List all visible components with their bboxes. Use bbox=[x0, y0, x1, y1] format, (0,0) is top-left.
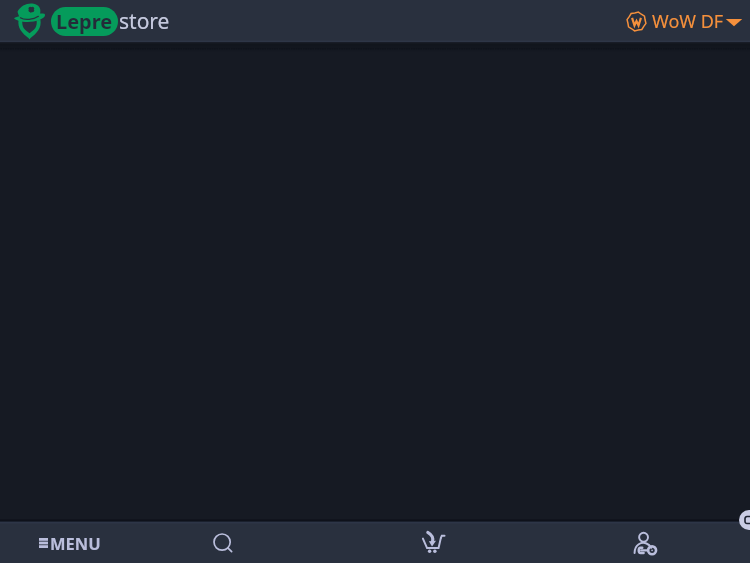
button[interactable]: WoW DF bbox=[626, 9, 750, 34]
button[interactable]: Support chat bbox=[739, 510, 750, 530]
staticText: WoW DF bbox=[652, 9, 724, 34]
button[interactable]: Account bbox=[539, 522, 750, 563]
staticText: store bbox=[119, 7, 170, 36]
button[interactable]: Cart bbox=[328, 522, 539, 563]
staticText: Lepre bbox=[56, 8, 113, 35]
button[interactable]: Search bbox=[118, 522, 328, 563]
staticText: MENU bbox=[50, 532, 101, 554]
button[interactable]: MENU bbox=[0, 522, 118, 563]
